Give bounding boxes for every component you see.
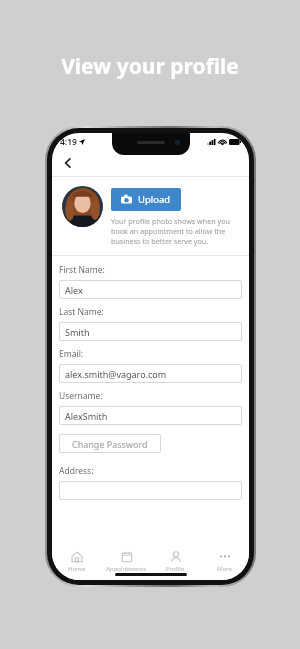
button[interactable]: Upload (111, 188, 181, 211)
button[interactable]: Back (56, 151, 80, 175)
staticText: Upload (138, 193, 171, 206)
button[interactable]: More (200, 549, 249, 575)
button[interactable]: Change Password (59, 434, 161, 453)
button[interactable]: Profile photo (62, 186, 103, 227)
staticText: Your profile photo shows when you book a… (111, 216, 241, 246)
staticText: Alex (65, 284, 83, 296)
staticText: Change Password (72, 438, 148, 450)
button[interactable]: Alex (59, 280, 242, 299)
staticText: Home (68, 565, 86, 573)
staticText: Profile (166, 565, 185, 573)
staticText: Last Name: (59, 306, 104, 318)
button[interactable]: Appointments (102, 549, 151, 575)
staticText: 4:19 (60, 136, 77, 148)
staticText: Appointments (106, 565, 147, 573)
staticText: View your profile (0, 52, 300, 81)
staticText: Username: (59, 390, 103, 402)
staticText: Address: (59, 465, 94, 477)
staticText: Email: (59, 348, 84, 360)
button[interactable]: Smith (59, 322, 242, 341)
staticText: First Name: (59, 264, 105, 276)
button[interactable]: alex.smith@vagaro.com (59, 364, 242, 383)
staticText: alex.smith@vagaro.com (65, 368, 167, 380)
staticText: More (217, 565, 232, 573)
button[interactable]: AlexSmith (59, 406, 242, 425)
staticText: AlexSmith (65, 410, 108, 422)
button[interactable]: Home (52, 549, 102, 575)
staticText: Smith (65, 326, 90, 338)
button[interactable]: Profile (151, 549, 200, 575)
